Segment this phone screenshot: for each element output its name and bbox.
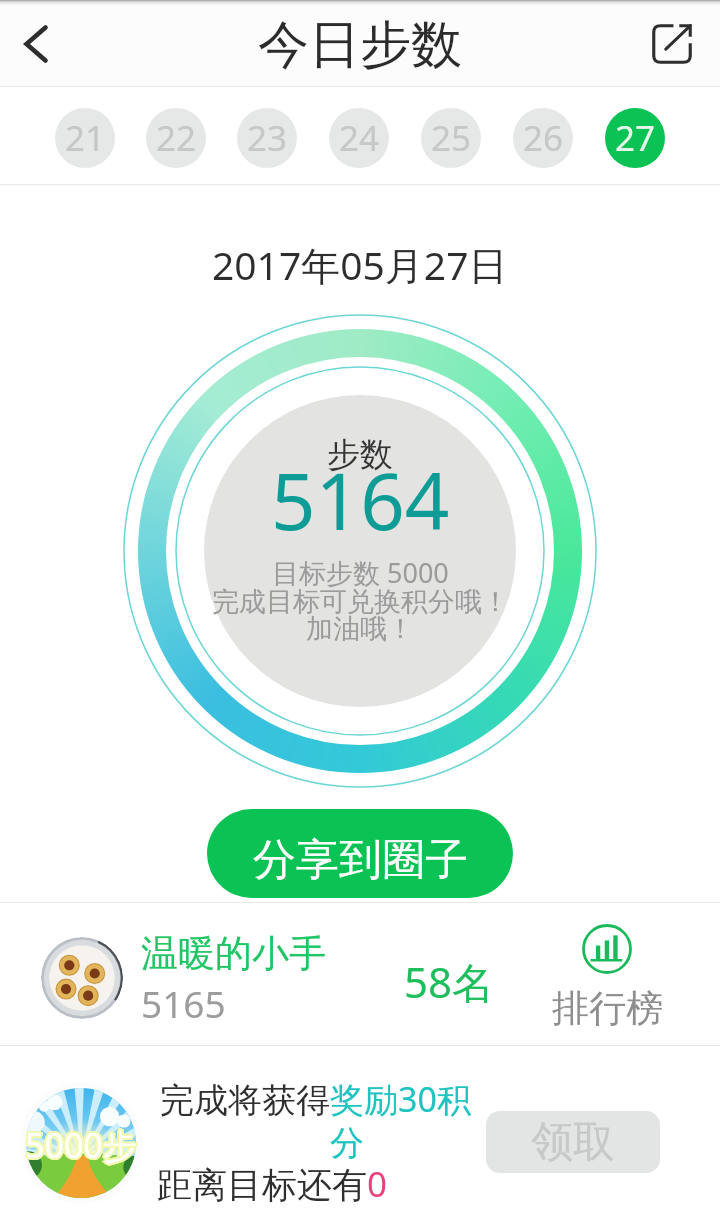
staticText: 23: [247, 114, 288, 162]
staticText: 加油哦！: [306, 612, 414, 646]
button[interactable]: 22: [146, 108, 206, 168]
staticText: 5165: [141, 978, 226, 1028]
button[interactable]: 温暖的小手: [0, 903, 720, 1045]
button[interactable]: 排行榜: [536, 924, 678, 1032]
staticText: 距离目标还有0: [157, 1160, 388, 1208]
staticText: 5000步: [23, 1122, 135, 1168]
staticText: 温暖的小手: [141, 930, 326, 977]
staticText: 5000步: [26, 1124, 138, 1170]
staticText: 完成目标可兑换积分哦！: [212, 585, 509, 619]
staticText: 5000步: [27, 1122, 139, 1168]
staticText: 5000步: [25, 1122, 137, 1168]
button[interactable]: 27: [605, 108, 665, 168]
button[interactable]: 25: [421, 108, 481, 168]
staticText: 5000步: [23, 1123, 135, 1169]
button[interactable]: 23: [237, 108, 297, 168]
staticText: 5000步: [25, 1120, 137, 1166]
button[interactable]: 24: [329, 108, 389, 168]
button[interactable]: Back: [0, 10, 72, 82]
staticText: 5000步: [24, 1120, 136, 1166]
button[interactable]: Share: [639, 11, 705, 77]
staticText: 5000步: [25, 1124, 137, 1170]
staticText: 21: [65, 114, 106, 162]
staticText: 58名: [404, 953, 495, 1010]
staticText: 分享到圈子: [253, 833, 468, 887]
staticText: 目标步数 5000: [272, 554, 449, 591]
staticText: 分: [330, 1122, 364, 1165]
button[interactable]: 分享到圈子: [207, 809, 513, 898]
staticText: 领取: [531, 1116, 615, 1169]
button[interactable]: 21: [55, 108, 115, 168]
staticText: 27: [615, 114, 656, 162]
button[interactable]: 26: [513, 108, 573, 168]
staticText: 25: [431, 114, 472, 162]
staticText: 排行榜: [552, 985, 663, 1032]
staticText: 步数: [327, 434, 393, 476]
button[interactable]: 领取: [486, 1111, 660, 1173]
staticText: 5000步: [27, 1121, 139, 1167]
button[interactable]: 5000步: [0, 1046, 720, 1230]
staticText: 22: [156, 114, 197, 162]
staticText: 完成将获得奖励30积: [160, 1076, 471, 1122]
staticText: 24: [339, 114, 380, 162]
staticText: 2017年05月27日: [212, 238, 508, 291]
staticText: 26: [523, 114, 564, 162]
staticText: 5164: [271, 447, 450, 553]
staticText: 今日步数: [258, 13, 462, 77]
